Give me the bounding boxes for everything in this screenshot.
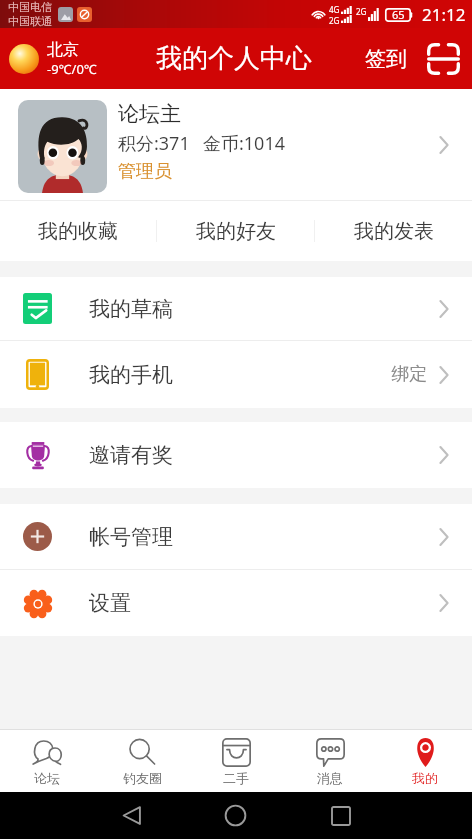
- staticText: 设置: [89, 590, 131, 616]
- staticText: 消息: [317, 770, 343, 786]
- staticText: -9℃/0℃: [47, 60, 97, 78]
- staticText: 65: [392, 7, 405, 22]
- button[interactable]: 论坛主: [0, 89, 472, 200]
- staticText: 论坛: [34, 770, 60, 786]
- staticText: 21:12: [422, 3, 466, 26]
- staticText: 签到: [365, 46, 407, 72]
- staticText: 中国联通: [8, 14, 52, 28]
- staticText: 2G: [356, 6, 367, 17]
- button[interactable]: Recents: [323, 798, 359, 834]
- button[interactable]: 我的发表: [315, 201, 472, 261]
- button[interactable]: 我的草稿: [0, 277, 472, 340]
- button[interactable]: 我的手机: [0, 341, 472, 408]
- staticText: 管理员: [118, 160, 172, 183]
- button[interactable]: Back: [113, 797, 151, 834]
- staticText: 我的手机: [89, 362, 173, 388]
- button[interactable]: 消息: [283, 730, 377, 792]
- staticText: 中国电信: [8, 0, 52, 14]
- staticText: 我的个人中心: [156, 42, 312, 75]
- button[interactable]: Scan QR code: [425, 41, 462, 77]
- button[interactable]: 钓友圈: [95, 730, 189, 792]
- button[interactable]: 我的好友: [157, 201, 314, 261]
- staticText: 帐号管理: [89, 524, 173, 550]
- staticText: 我的收藏: [38, 219, 118, 244]
- staticText: 钓友圈: [123, 770, 162, 786]
- staticText: 4G: [329, 4, 340, 15]
- staticText: 北京: [47, 40, 79, 60]
- button[interactable]: Home: [217, 797, 254, 834]
- button[interactable]: 设置: [0, 570, 472, 636]
- button[interactable]: 签到: [360, 40, 412, 78]
- staticText: 积分:371: [118, 131, 190, 156]
- staticText: 论坛主: [118, 101, 181, 127]
- button[interactable]: 我的: [378, 730, 472, 792]
- button[interactable]: 论坛: [0, 730, 94, 792]
- staticText: 我的发表: [354, 219, 434, 244]
- staticText: 绑定: [391, 363, 427, 386]
- button[interactable]: 我的收藏: [0, 201, 156, 261]
- staticText: 二手: [223, 770, 249, 786]
- button[interactable]: 北京: [0, 34, 105, 84]
- button[interactable]: 帐号管理: [0, 504, 472, 569]
- staticText: 我的草稿: [89, 296, 173, 322]
- staticText: 金币:1014: [203, 131, 286, 156]
- staticText: 邀请有奖: [89, 442, 173, 468]
- staticText: 我的好友: [196, 219, 276, 244]
- button[interactable]: 邀请有奖: [0, 422, 472, 488]
- staticText: 2G: [329, 15, 340, 26]
- staticText: 我的: [412, 770, 438, 786]
- button[interactable]: 二手: [189, 730, 283, 792]
